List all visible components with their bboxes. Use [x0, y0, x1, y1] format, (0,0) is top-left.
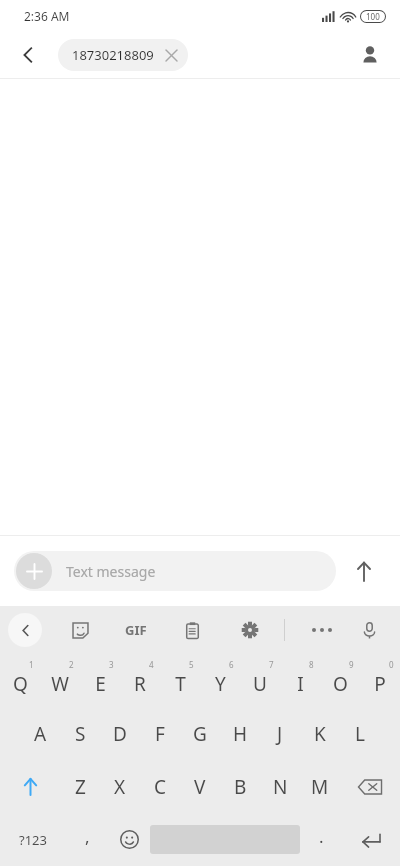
staticText: L	[355, 721, 365, 747]
staticText: K	[314, 721, 326, 747]
button[interactable]: Z	[60, 760, 100, 813]
staticText: P	[374, 671, 386, 697]
staticText: ?123	[19, 831, 47, 849]
staticText: O	[333, 671, 348, 697]
button[interactable]: Close toolbar	[8, 613, 42, 647]
button[interactable]: J	[260, 707, 300, 760]
staticText: I	[297, 671, 304, 697]
button[interactable]: Remove recipient	[162, 46, 180, 64]
staticText: 1	[29, 659, 34, 670]
staticText: 5	[189, 659, 194, 670]
staticText: Text message	[66, 562, 156, 581]
button[interactable]: L	[340, 707, 380, 760]
staticText: H	[233, 721, 248, 747]
button[interactable]: Y	[200, 654, 240, 707]
staticText: 9	[349, 659, 354, 670]
staticText: 18730218809	[72, 46, 154, 64]
staticText: R	[134, 671, 146, 697]
button[interactable]: Voice input	[350, 611, 388, 649]
button[interactable]: U	[240, 654, 280, 707]
button[interactable]: ?123	[0, 813, 66, 866]
staticText: S	[75, 721, 86, 747]
staticText: G	[193, 721, 207, 747]
button[interactable]: Shift	[0, 760, 60, 813]
staticText: D	[113, 721, 127, 747]
button[interactable]: Backspace	[340, 760, 400, 813]
button[interactable]: O	[320, 654, 360, 707]
staticText: .	[319, 825, 324, 848]
button[interactable]: Attach	[16, 553, 52, 589]
staticText: 4	[149, 659, 154, 670]
staticText: Z	[75, 774, 86, 800]
button[interactable]: Stickers	[62, 612, 98, 648]
staticText: 6	[229, 659, 234, 670]
button[interactable]: .	[300, 813, 342, 866]
button[interactable]: G	[180, 707, 220, 760]
staticText: B	[234, 774, 247, 800]
button[interactable]: D	[100, 707, 140, 760]
staticText: 7	[269, 659, 274, 670]
button[interactable]: Attach	[14, 551, 336, 591]
staticText: N	[273, 774, 288, 800]
button[interactable]: X	[100, 760, 140, 813]
button[interactable]: T	[160, 654, 200, 707]
button[interactable]: GIF	[116, 610, 156, 650]
staticText: 3	[109, 659, 114, 670]
button[interactable]: Contacts	[350, 35, 390, 75]
button[interactable]: C	[140, 760, 180, 813]
button[interactable]: Q	[0, 654, 40, 707]
button[interactable]: W	[40, 654, 80, 707]
staticText: ,	[85, 825, 90, 848]
staticText: 0	[389, 659, 394, 670]
staticText: 2	[69, 659, 74, 670]
button[interactable]: Send	[342, 549, 386, 593]
staticText: T	[175, 671, 186, 697]
button[interactable]: B	[220, 760, 260, 813]
button[interactable]: Settings	[232, 612, 268, 648]
staticText: Y	[215, 671, 226, 697]
button[interactable]: ,	[66, 813, 108, 866]
staticText: M	[311, 774, 329, 800]
button[interactable]: More options	[302, 610, 342, 650]
button[interactable]: 18730218809	[58, 39, 188, 71]
button[interactable]: Emoji	[108, 813, 150, 866]
button[interactable]: S	[60, 707, 100, 760]
button[interactable]: N	[260, 760, 300, 813]
staticText: U	[253, 671, 267, 697]
button[interactable]: E	[80, 654, 120, 707]
button[interactable]: R	[120, 654, 160, 707]
button[interactable]: I	[280, 654, 320, 707]
button[interactable]: Clipboard	[174, 612, 210, 648]
staticText: 2:36 AM	[24, 8, 70, 24]
button[interactable]: V	[180, 760, 220, 813]
staticText: Q	[13, 671, 28, 697]
button[interactable]: H	[220, 707, 260, 760]
staticText: F	[155, 721, 165, 747]
staticText: 100	[366, 11, 380, 22]
button[interactable]: P	[360, 654, 400, 707]
staticText: 8	[309, 659, 314, 670]
button[interactable]: K	[300, 707, 340, 760]
staticText: J	[277, 721, 283, 747]
button[interactable]: M	[300, 760, 340, 813]
staticText: V	[194, 774, 206, 800]
staticText: X	[114, 774, 126, 800]
button[interactable]: F	[140, 707, 180, 760]
staticText: A	[34, 721, 47, 747]
staticText: W	[51, 671, 69, 697]
staticText: E	[95, 671, 106, 697]
button[interactable]: Enter	[342, 813, 400, 866]
button[interactable]: A	[20, 707, 60, 760]
button[interactable]: Back	[8, 35, 48, 75]
staticText: C	[154, 774, 167, 800]
staticText: GIF	[125, 621, 147, 639]
